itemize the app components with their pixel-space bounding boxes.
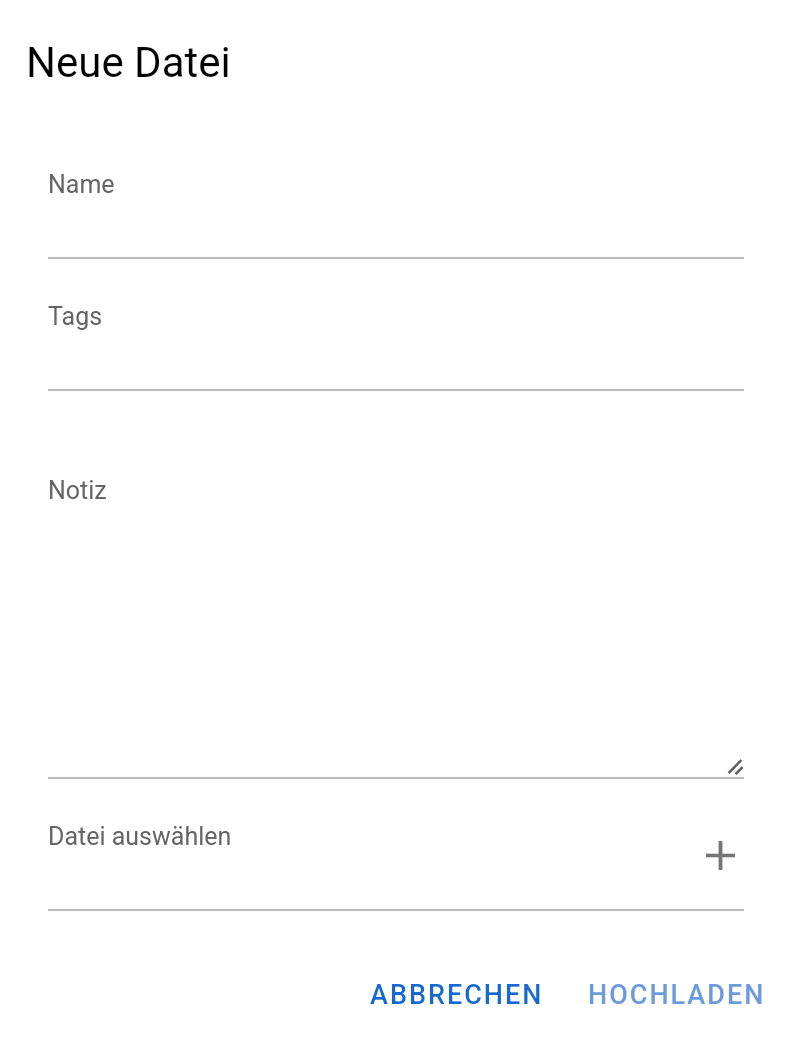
- button[interactable]: ABBRECHEN: [357, 965, 557, 1025]
- staticText: HOCHLADEN: [588, 979, 766, 1011]
- staticText: Name: [48, 170, 115, 199]
- button[interactable]: Größe ändern: [718, 750, 748, 778]
- button[interactable]: HOCHLADEN: [574, 965, 779, 1025]
- staticText: Neue Datei: [26, 38, 231, 87]
- button[interactable]: Notiz: [46, 458, 746, 778]
- staticText: Notiz: [48, 476, 107, 505]
- button[interactable]: Name: [46, 152, 746, 258]
- staticText: Tags: [48, 302, 103, 331]
- button[interactable]: Datei hinzufügen: [698, 825, 742, 885]
- button[interactable]: Tags: [46, 284, 746, 390]
- button[interactable]: Datei auswählen: [46, 800, 686, 910]
- staticText: ABBRECHEN: [370, 979, 544, 1011]
- staticText: Datei auswählen: [48, 822, 232, 851]
